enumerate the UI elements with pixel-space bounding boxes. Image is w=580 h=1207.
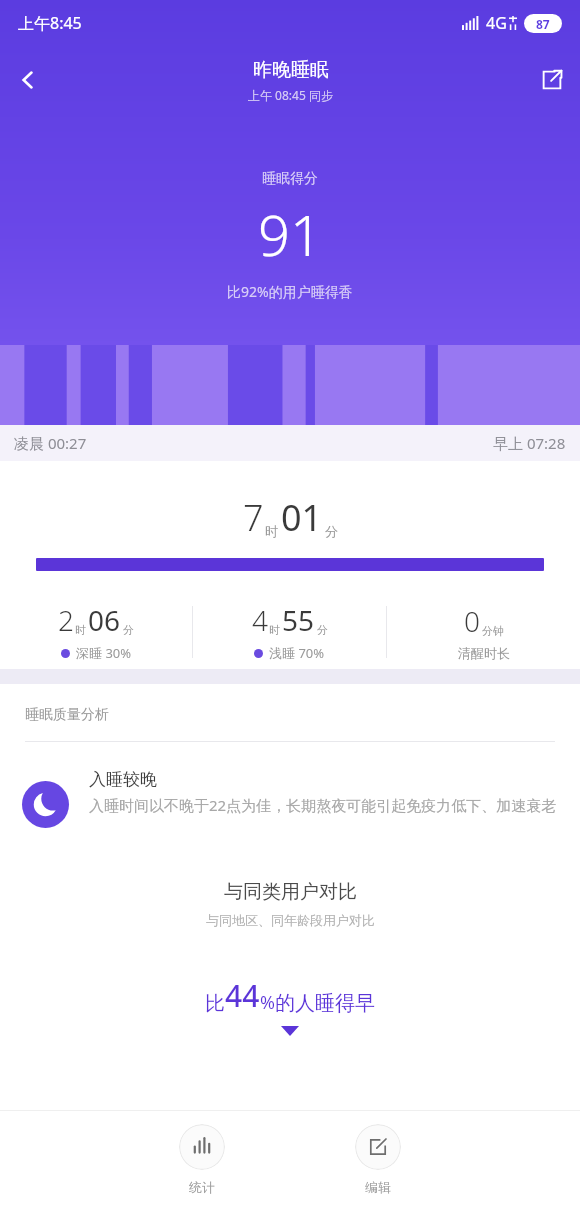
button[interactable]: 入睡较晚	[22, 769, 558, 828]
staticText: 06	[88, 601, 121, 639]
staticText: 时	[75, 623, 86, 637]
staticText: 浅睡 70%	[269, 644, 325, 662]
staticText: 早上 07:28	[493, 433, 566, 453]
staticText: 统计	[189, 1179, 215, 1195]
staticText: 7	[243, 493, 264, 542]
staticText: 4	[252, 601, 268, 639]
button[interactable]: 4	[193, 601, 386, 662]
staticText: 分	[317, 623, 328, 637]
staticText: 87	[536, 16, 550, 32]
staticText: 分	[325, 523, 338, 539]
staticText: 凌晨 00:27	[14, 433, 87, 453]
staticText: 睡眠得分	[262, 170, 318, 188]
staticText: 比92%的用户睡得香	[227, 282, 353, 301]
staticText: 的人睡得早	[275, 991, 375, 1016]
staticText: 入睡较晚	[89, 769, 157, 790]
staticText: 睡眠质量分析	[25, 706, 109, 724]
button[interactable]: 统计	[169, 1120, 235, 1199]
staticText: 44	[225, 975, 260, 1016]
button[interactable]: 0	[387, 602, 580, 661]
button[interactable]: Share	[524, 52, 580, 108]
staticText: 0	[464, 602, 480, 640]
button[interactable]: 2	[0, 601, 192, 662]
staticText: 上午 08:45 同步	[248, 87, 333, 103]
button[interactable]: 编辑	[345, 1120, 411, 1199]
staticText: 时	[265, 523, 278, 539]
staticText: 比	[205, 991, 225, 1016]
staticText: 时	[269, 623, 280, 637]
staticText: %	[260, 990, 275, 1015]
staticText: 2	[58, 601, 74, 639]
button[interactable]: Back	[0, 52, 56, 108]
staticText: 与同地区、同年龄段用户对比	[206, 912, 375, 928]
staticText: 上午8:45	[18, 12, 82, 34]
staticText: 与同类用户对比	[224, 880, 357, 904]
staticText: 分钟	[482, 624, 504, 638]
staticText: 昨晚睡眠	[253, 58, 329, 82]
staticText: 55	[282, 601, 315, 639]
staticText: 4G	[486, 12, 507, 34]
staticText: 91	[258, 196, 322, 272]
staticText: 入睡时间以不晚于22点为佳，长期熬夜可能引起免疫力低下、加速衰老	[89, 795, 557, 815]
staticText: 编辑	[365, 1179, 391, 1195]
staticText: 01	[281, 493, 323, 542]
staticText: 深睡 30%	[76, 644, 132, 662]
staticText: 清醒时长	[458, 645, 510, 661]
staticText: 分	[123, 623, 134, 637]
